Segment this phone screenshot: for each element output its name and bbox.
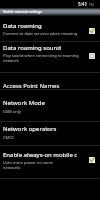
staticText: GSM only [3, 109, 21, 114]
staticText: Network operators [3, 125, 57, 133]
button[interactable] [0, 90, 100, 121]
button[interactable]: Checked checkbox [89, 157, 95, 163]
staticText: CMCC [3, 135, 15, 140]
staticText: Uses more power on some networks [3, 160, 63, 170]
staticText: Connect to data services when roaming [3, 31, 87, 36]
button[interactable] [0, 146, 100, 178]
button[interactable]: Checked checkbox [89, 28, 95, 34]
staticText: Enable always-on mobile c [3, 151, 78, 159]
staticText: Data roaming [3, 22, 42, 30]
staticText: Play sound when connecting to roaming ne… [3, 53, 83, 63]
staticText: PM [89, 3, 94, 7]
button[interactable] [0, 122, 100, 144]
staticText: Network Mode [3, 99, 45, 107]
button[interactable]: Mobile network settings [0, 8, 100, 16]
staticText: Access Point Names [3, 82, 60, 90]
button[interactable] [0, 42, 100, 72]
staticText: 5:41 [78, 1, 88, 7]
staticText: Data roaming sound [3, 44, 61, 52]
button[interactable]: Unchecked checkbox [89, 53, 95, 59]
staticText: Mobile network settings [3, 10, 42, 14]
button[interactable] [0, 17, 100, 41]
